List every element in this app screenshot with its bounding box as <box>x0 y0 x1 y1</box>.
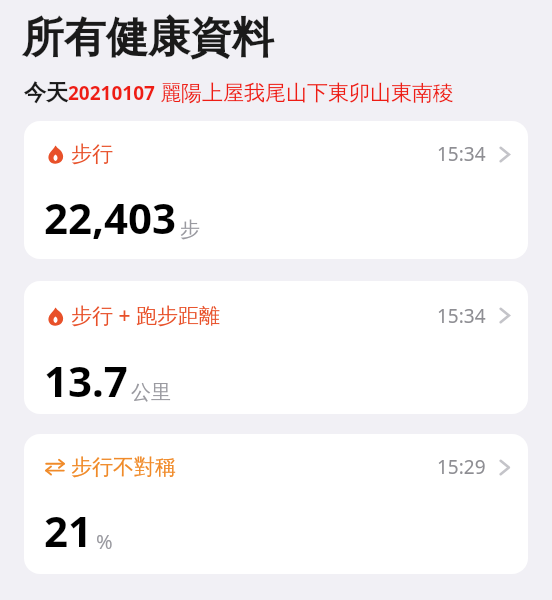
other: Walking asymmetry <box>45 457 65 477</box>
staticText: 今天20210107 麗陽上屋我尾山下東卯山東南稜 <box>24 79 454 107</box>
staticText: 所有健康資料 <box>22 12 274 65</box>
staticText: 22,403 <box>44 189 177 246</box>
staticText: 步行 + 跑步距離 <box>71 301 220 330</box>
button[interactable]: Activity <box>24 281 528 414</box>
staticText: 13.7 <box>44 352 128 409</box>
staticText: 步行 <box>71 141 113 167</box>
staticText: 公里 <box>131 380 171 405</box>
other: Activity <box>46 307 65 326</box>
button[interactable]: Activity <box>24 121 528 259</box>
staticText: 15:34 <box>437 141 486 167</box>
other: Activity <box>46 145 65 164</box>
staticText: 步 <box>180 217 200 242</box>
staticText: 15:34 <box>437 303 486 329</box>
staticText: 21 <box>44 502 93 559</box>
staticText: 15:29 <box>437 454 486 480</box>
button[interactable]: Walking asymmetry <box>24 434 528 574</box>
staticText: % <box>96 528 113 555</box>
staticText: 步行不對稱 <box>71 454 176 480</box>
